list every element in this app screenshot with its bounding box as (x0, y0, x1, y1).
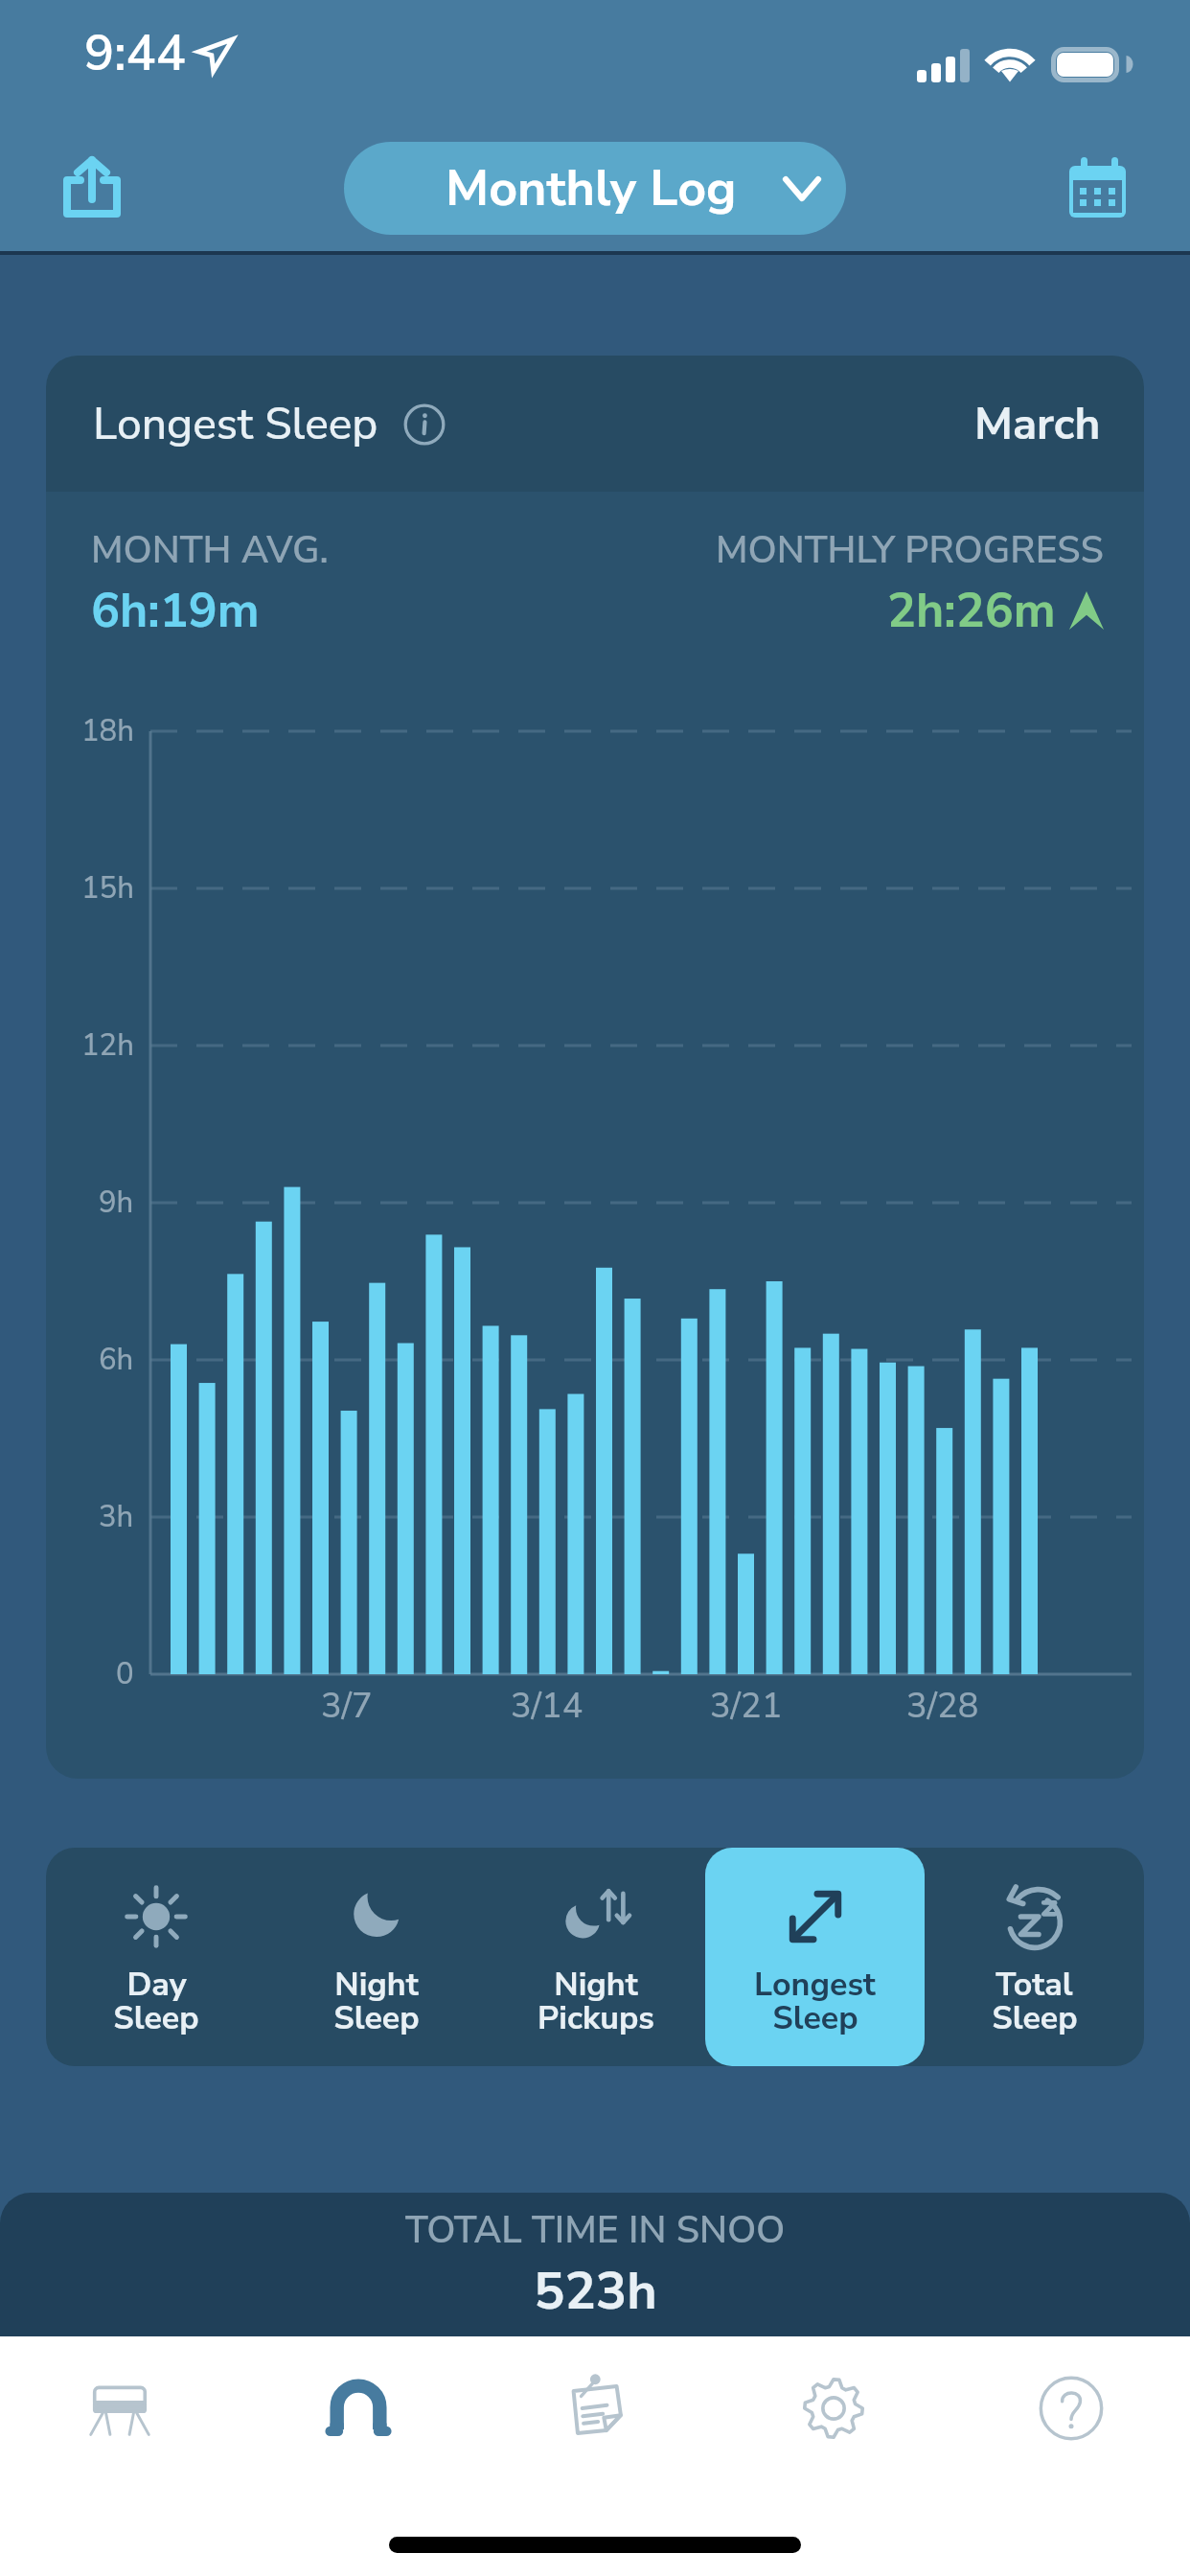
staticText: March (974, 394, 1101, 454)
staticText: MONTH AVG. (91, 525, 329, 576)
staticText: Total (995, 1963, 1073, 2001)
button[interactable]: Total (925, 1848, 1144, 2066)
button[interactable]: Help (952, 2336, 1190, 2480)
staticText: Sleep (113, 1996, 199, 2035)
button[interactable]: Night (266, 1848, 486, 2066)
staticText: Monthly Log (446, 154, 737, 222)
staticText: Longest Sleep (93, 394, 378, 454)
staticText: 3/14 (511, 1683, 584, 1730)
staticText: MONTHLY PROGRESS (716, 525, 1104, 576)
staticText: 2h:26m (887, 578, 1056, 643)
staticText: Sleep (333, 1996, 420, 2035)
button[interactable]: Night (486, 1848, 705, 2066)
staticText: 15h (81, 868, 134, 908)
staticText: 9:44 (84, 19, 186, 87)
staticText: 12h (81, 1025, 134, 1066)
staticText: Night (334, 1963, 419, 2001)
staticText: 0 (116, 1654, 134, 1694)
staticText: 6h (99, 1340, 134, 1380)
staticText: 3/21 (710, 1683, 783, 1730)
staticText: Sleep (772, 1996, 858, 2035)
button[interactable]: Journal (477, 2336, 715, 2480)
staticText: 3/7 (321, 1683, 373, 1730)
staticText: Longest (754, 1963, 876, 2001)
button[interactable]: Settings (715, 2336, 952, 2480)
button[interactable]: Bassinet (0, 2336, 239, 2480)
staticText: TOTAL TIME IN SNOO (405, 2205, 786, 2256)
staticText: Pickups (538, 1996, 654, 2035)
staticText: Night (554, 1963, 638, 2001)
staticText: 6h:19m (91, 578, 260, 643)
button[interactable]: Day (46, 1848, 266, 2066)
button[interactable]: Longest (705, 1848, 925, 2066)
button[interactable]: Snoo (239, 2336, 477, 2480)
staticText: 3/28 (906, 1683, 979, 1730)
staticText: 18h (81, 711, 134, 751)
staticText: 3h (99, 1497, 134, 1537)
staticText: 523h (534, 2256, 657, 2327)
button[interactable]: Share (25, 120, 159, 254)
button[interactable]: Calendar (1030, 120, 1164, 254)
button[interactable]: Info (397, 397, 452, 452)
staticText: Day (126, 1963, 187, 2001)
button[interactable]: Monthly Log (344, 142, 846, 235)
staticText: Sleep (992, 1996, 1078, 2035)
staticText: 9h (99, 1183, 134, 1223)
